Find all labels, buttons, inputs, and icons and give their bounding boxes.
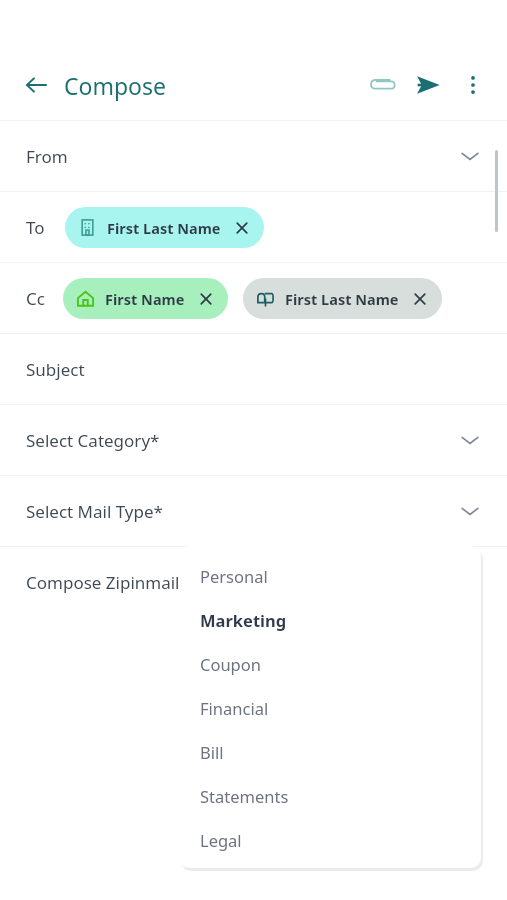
button[interactable]: From [0,121,507,191]
staticText: Subject [26,358,85,381]
staticText: Marketing [200,609,287,631]
button[interactable]: Bill [179,730,481,774]
staticText: First Last Name [107,218,221,238]
button[interactable]: Legal [179,818,481,862]
button[interactable]: Back [14,63,58,107]
button[interactable]: More options [451,63,495,107]
button[interactable]: Marketing [179,598,481,642]
staticText: Legal [200,829,242,851]
button[interactable]: To [0,192,507,262]
staticText: Financial [200,697,269,719]
staticText: First Last Name [285,289,399,309]
staticText: First Name [105,289,185,309]
staticText: Cc [26,287,45,310]
staticText: To [26,216,45,239]
button[interactable]: Attach file [359,62,405,108]
button[interactable]: Send [405,62,451,108]
button[interactable]: Personal [179,554,481,598]
staticText: Personal [200,565,268,587]
staticText: Coupon [200,653,261,675]
staticText: Compose Zipinmail [26,571,180,594]
staticText: From [26,145,68,168]
button[interactable]: First Name [63,278,228,319]
button[interactable]: Remove First Name [197,290,215,308]
staticText: Select Mail Type* [26,500,163,523]
button[interactable]: Select Category* [0,405,507,475]
button[interactable]: Statements [179,774,481,818]
button[interactable]: Cc [0,263,507,333]
button[interactable]: Financial [179,686,481,730]
button[interactable]: First Last Name [243,278,442,319]
button[interactable]: Remove First Last Name [233,219,251,237]
button[interactable]: Coupon [179,642,481,686]
staticText: Select Category* [26,429,160,452]
button[interactable]: Remove First Last Name [411,290,429,308]
staticText: Statements [200,785,289,807]
button[interactable]: Select Mail Type* [0,476,507,546]
staticText: Compose [64,70,167,101]
button[interactable]: First Last Name [65,207,264,248]
button[interactable]: Subject [0,334,507,404]
staticText: Bill [200,741,224,763]
